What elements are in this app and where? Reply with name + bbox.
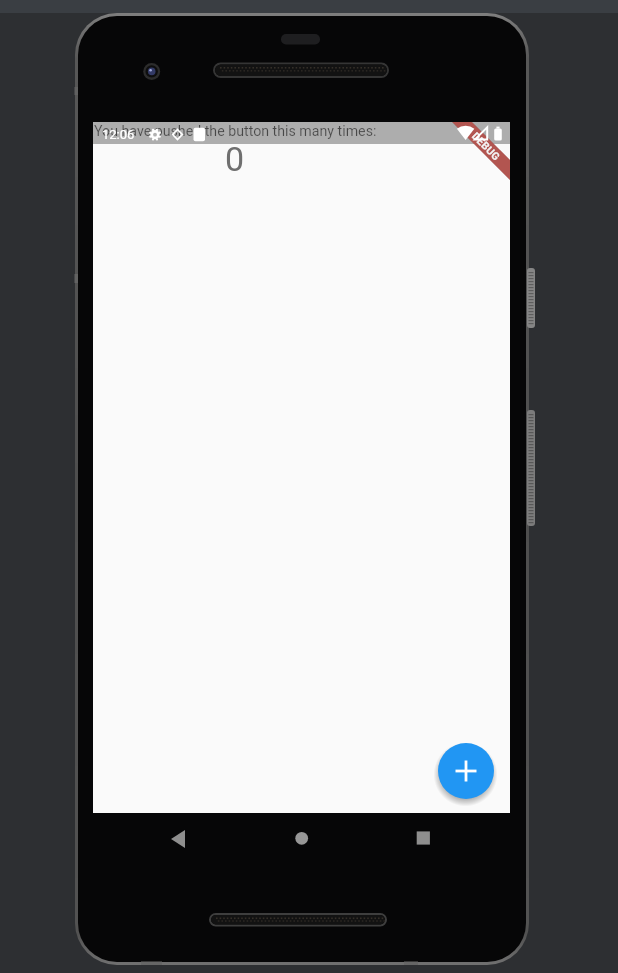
button[interactable] [158, 819, 198, 859]
staticText: 0 [225, 139, 245, 179]
staticText: 12:06 [102, 127, 135, 142]
button[interactable] [438, 743, 494, 799]
button[interactable] [281, 818, 321, 858]
button[interactable] [403, 818, 443, 858]
staticText: You have pushed the button this many tim… [94, 123, 377, 140]
staticText: DEBUG [470, 130, 503, 163]
